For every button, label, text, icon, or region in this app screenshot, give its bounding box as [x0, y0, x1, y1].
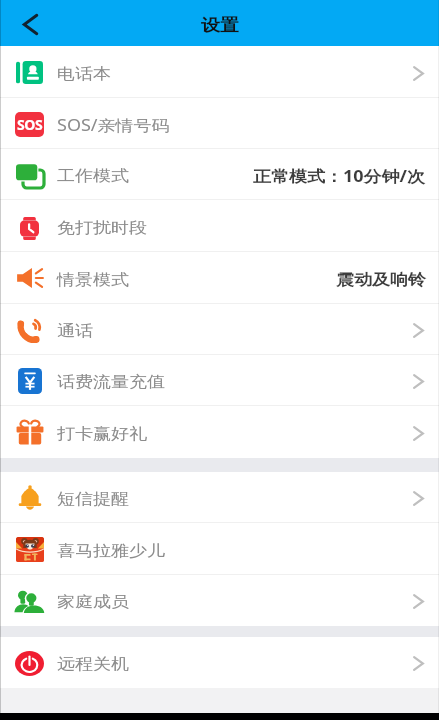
button[interactable]: 通话: [0, 304, 439, 355]
staticText: 远程关机: [57, 655, 129, 674]
button[interactable]: 家庭成员: [0, 575, 439, 626]
button[interactable]: 话费流量充值: [0, 355, 439, 406]
button[interactable]: 远程关机: [0, 637, 439, 688]
staticText: 家庭成员: [57, 593, 129, 612]
button[interactable]: 短信提醒: [0, 472, 439, 523]
staticText: 正常模式：10分钟/次: [253, 165, 426, 187]
staticText: 免打扰时段: [57, 219, 147, 238]
staticText: SOS/亲情号码: [57, 115, 170, 136]
staticText: 短信提醒: [57, 490, 129, 509]
staticText: 设置: [201, 15, 239, 36]
staticText: 话费流量充值: [57, 373, 165, 392]
staticText: 情景模式: [57, 271, 129, 290]
staticText: 喜马拉雅少儿: [57, 542, 165, 561]
button[interactable]: 打卡赢好礼: [0, 406, 439, 458]
staticText: 电话本: [57, 65, 111, 84]
button[interactable]: SOS: [0, 98, 439, 149]
button[interactable]: 喜马拉雅少儿: [0, 523, 439, 575]
button[interactable]: 工作模式: [0, 149, 439, 200]
button[interactable]: Back: [0, 0, 60, 46]
staticText: 打卡赢好礼: [57, 425, 147, 444]
staticText: 震动及响铃: [336, 270, 426, 291]
staticText: SOS: [17, 115, 43, 134]
staticText: 工作模式: [57, 167, 129, 186]
button[interactable]: 电话本: [0, 46, 439, 98]
staticText: 通话: [57, 322, 93, 341]
button[interactable]: 情景模式: [0, 252, 439, 304]
button[interactable]: 免打扰时段: [0, 200, 439, 252]
